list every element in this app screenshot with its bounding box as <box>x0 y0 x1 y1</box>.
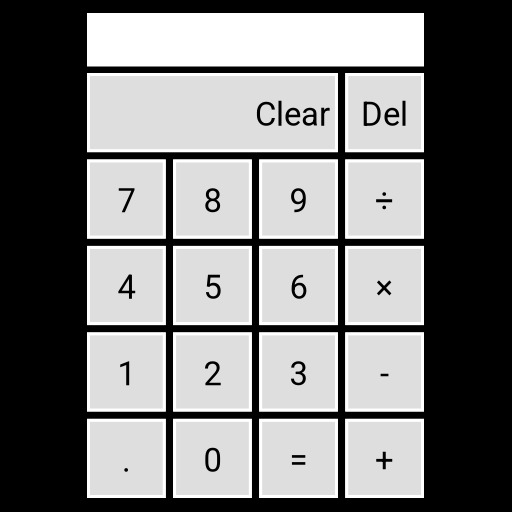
staticText: + <box>375 441 394 480</box>
button[interactable]: 8 <box>173 159 252 239</box>
button[interactable]: Clear <box>87 73 338 152</box>
button[interactable]: 6 <box>259 246 338 325</box>
button[interactable]: 9 <box>259 159 338 239</box>
staticText: 0 <box>203 441 221 480</box>
button[interactable]: Decimal point <box>87 419 166 498</box>
staticText: × <box>376 268 394 307</box>
button[interactable]: Subtract <box>345 332 424 412</box>
button[interactable]: 3 <box>259 332 338 412</box>
button[interactable]: Equals <box>259 419 338 498</box>
staticText: Clear <box>255 95 330 134</box>
button[interactable]: Multiply <box>345 246 424 325</box>
staticText: 6 <box>289 268 307 307</box>
staticText: ÷ <box>375 182 394 220</box>
button[interactable]: Del <box>345 73 424 152</box>
staticText: 2 <box>203 355 221 393</box>
button[interactable]: 2 <box>173 332 252 412</box>
staticText: 7 <box>117 182 135 220</box>
staticText: 8 <box>203 182 221 220</box>
button[interactable]: 1 <box>87 332 166 412</box>
staticText: 5 <box>203 268 221 307</box>
staticText: 3 <box>289 355 307 393</box>
button[interactable]: Divide <box>345 159 424 239</box>
staticText: - <box>380 355 389 393</box>
button[interactable]: 0 <box>173 419 252 498</box>
staticText: 9 <box>289 182 307 220</box>
button[interactable]: Add <box>345 419 424 498</box>
button[interactable]: 7 <box>87 159 166 239</box>
staticText: . <box>122 441 131 480</box>
button[interactable]: 4 <box>87 246 166 325</box>
staticText: 1 <box>117 355 135 393</box>
staticText: Del <box>361 95 408 134</box>
button[interactable]: 5 <box>173 246 252 325</box>
staticText: 4 <box>117 268 135 307</box>
staticText: = <box>289 441 307 480</box>
